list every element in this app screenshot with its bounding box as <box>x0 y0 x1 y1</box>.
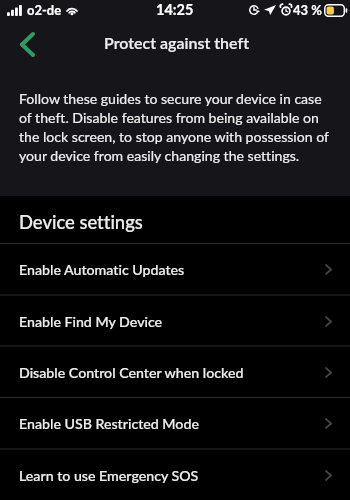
button[interactable]: Learn to use Emergency SOS <box>0 450 350 500</box>
staticText: Enable Find My Device <box>19 313 325 330</box>
button[interactable]: Enable Automatic Updates <box>0 244 350 295</box>
staticText: Enable Automatic Updates <box>19 261 325 278</box>
staticText: 14:25 <box>156 1 194 18</box>
staticText: Disable Control Center when locked <box>19 364 325 381</box>
staticText: Follow these guides to secure your devic… <box>19 90 336 164</box>
staticText: 43 % <box>293 2 322 18</box>
staticText: Learn to use Emergency SOS <box>19 467 325 484</box>
staticText: Protect against theft <box>104 33 249 52</box>
button[interactable]: Enable USB Restricted Mode <box>0 398 350 449</box>
button[interactable]: Disable Control Center when locked <box>0 347 350 398</box>
button[interactable]: Enable Find My Device <box>0 296 350 347</box>
staticText: o2-de <box>27 2 62 18</box>
staticText: Enable USB Restricted Mode <box>19 415 325 432</box>
button[interactable]: Back <box>10 27 44 61</box>
staticText: Device settings <box>19 211 143 233</box>
